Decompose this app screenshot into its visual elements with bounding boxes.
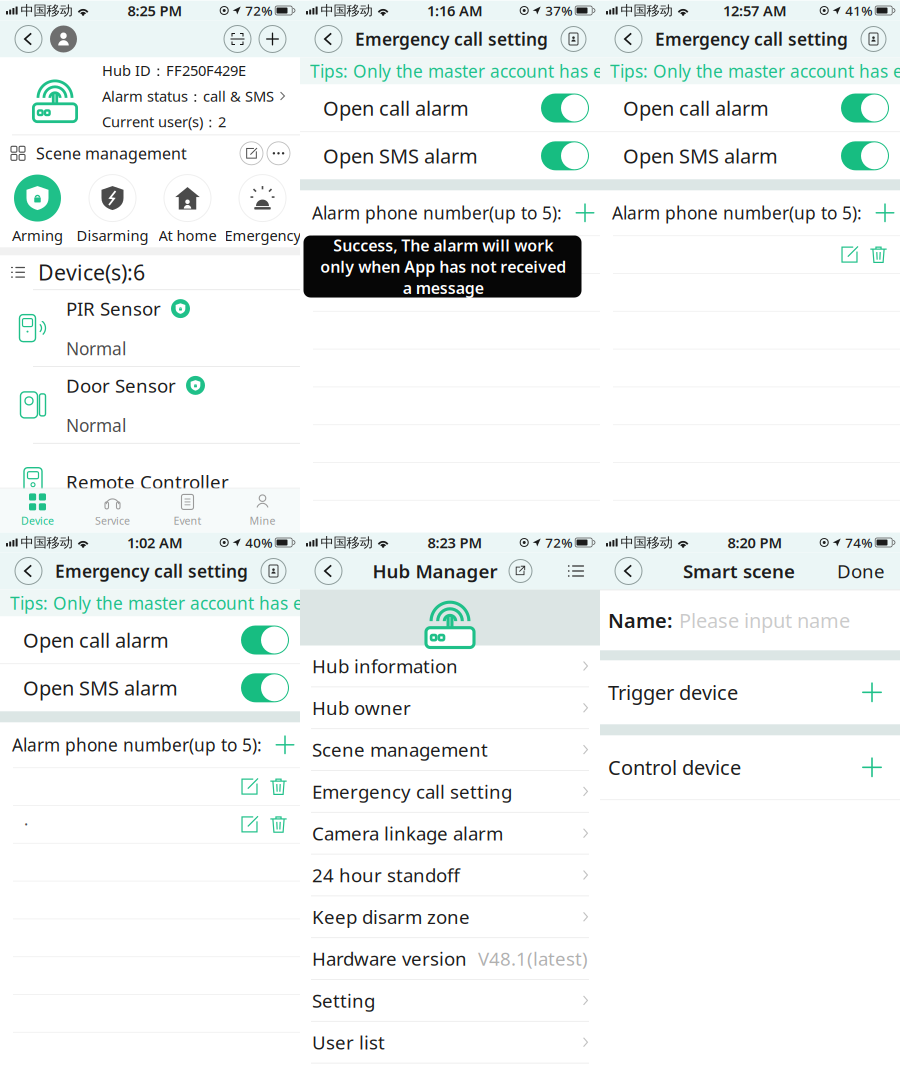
- staticText: Normal: [66, 414, 126, 437]
- staticText: Hub Manager: [372, 559, 497, 583]
- staticText: Open SMS alarm: [323, 142, 478, 169]
- staticText: Device(s):6: [38, 258, 145, 286]
- staticText: 中国移动: [21, 2, 73, 19]
- button[interactable]: 24 hour standoff: [300, 854, 600, 896]
- button[interactable]: More: [265, 140, 292, 167]
- button[interactable]: Back: [611, 553, 646, 588]
- staticText: 1:16 AM: [427, 1, 483, 20]
- button[interactable]: Service: [75, 488, 150, 532]
- staticText: Event: [173, 513, 201, 528]
- staticText: Tips: Only the master account has editin…: [610, 59, 900, 82]
- button[interactable]: Back: [11, 553, 46, 588]
- button[interactable]: Hub owner: [300, 687, 600, 729]
- staticText: 12:57 AM: [723, 1, 787, 20]
- button[interactable]: Contacts: [857, 22, 890, 55]
- staticText: Normal: [66, 337, 126, 360]
- button[interactable]: PIR Sensor: [0, 289, 300, 366]
- staticText: Emergency call setting: [55, 559, 248, 582]
- button[interactable]: User list: [300, 1022, 600, 1063]
- button[interactable]: Back: [311, 553, 346, 588]
- button[interactable]: Share: [505, 556, 535, 586]
- button[interactable]: Emergency: [225, 171, 300, 247]
- staticText: 37%: [545, 2, 572, 19]
- button[interactable]: Add phone number: [270, 730, 300, 760]
- staticText: Emergency call setting: [312, 779, 512, 804]
- staticText: V48.1(latest): [478, 946, 588, 971]
- button[interactable]: Scene management: [300, 729, 600, 771]
- staticText: Please input name: [679, 607, 850, 634]
- staticText: 中国移动: [621, 2, 673, 19]
- button[interactable]: Add phone number: [570, 198, 600, 228]
- staticText: Tips: Only the master account has editin…: [10, 591, 394, 614]
- button[interactable]: Menu: [562, 557, 590, 585]
- button[interactable]: Keep disarm zone: [300, 896, 600, 938]
- staticText: Hardware version: [312, 946, 467, 971]
- button[interactable]: Scan: [220, 21, 255, 56]
- staticText: Remote Controller: [66, 469, 229, 494]
- staticText: 8:25 PM: [127, 1, 182, 20]
- button[interactable]: Back: [611, 21, 646, 56]
- staticText: Camera linkage alarm: [312, 821, 503, 846]
- staticText: Mine: [249, 513, 275, 528]
- button[interactable]: Back: [311, 21, 346, 56]
- staticText: 中国移动: [621, 534, 673, 551]
- button[interactable]: Control device: [600, 735, 900, 799]
- button[interactable]: Hub information: [300, 645, 600, 687]
- button[interactable]: Contacts: [257, 554, 290, 587]
- button[interactable]: Delete number: [264, 772, 293, 801]
- staticText: 74%: [845, 534, 872, 551]
- button[interactable]: Setting: [300, 980, 600, 1022]
- staticText: Smart scene: [683, 559, 795, 583]
- button[interactable]: Delete number: [264, 810, 293, 839]
- button[interactable]: Arming: [0, 171, 75, 247]
- button[interactable]: Mine: [225, 488, 300, 532]
- staticText: 8:20 PM: [727, 533, 782, 552]
- button[interactable]: Camera linkage alarm: [300, 813, 600, 854]
- staticText: Emergency call setting: [655, 27, 848, 50]
- button[interactable]: At home: [150, 171, 225, 247]
- staticText: Open call alarm: [323, 95, 469, 121]
- staticText: Hub information: [312, 654, 458, 678]
- staticText: User list: [312, 1030, 385, 1055]
- staticText: Scene management: [312, 737, 488, 762]
- staticText: 中国移动: [321, 2, 373, 19]
- button[interactable]: Device: [0, 488, 75, 532]
- button[interactable]: Back: [11, 21, 46, 56]
- staticText: Current user(s)：2: [102, 112, 226, 131]
- staticText: Hub owner: [312, 695, 411, 720]
- button[interactable]: Delete number: [864, 240, 893, 269]
- button[interactable]: Edit scenes: [238, 140, 265, 167]
- staticText: Alarm phone number(up to 5):: [312, 201, 562, 224]
- staticText: Done: [837, 559, 885, 583]
- staticText: Name:: [608, 607, 673, 634]
- staticText: 8:23 PM: [427, 533, 482, 552]
- staticText: 中国移动: [21, 534, 73, 551]
- button[interactable]: Event: [150, 488, 225, 532]
- staticText: Emergency: [224, 226, 300, 245]
- button[interactable]: Hardware version: [300, 938, 600, 980]
- button[interactable]: Remote Controller: [0, 443, 300, 520]
- staticText: Disarming: [76, 226, 148, 245]
- button[interactable]: Contacts: [557, 22, 590, 55]
- staticText: Open call alarm: [623, 95, 769, 121]
- button[interactable]: Account: [46, 21, 81, 56]
- button[interactable]: Done: [832, 554, 890, 587]
- button[interactable]: Emergency call setting: [300, 771, 600, 813]
- staticText: Service: [95, 513, 130, 528]
- staticText: ·: [24, 814, 28, 835]
- staticText: Device: [21, 513, 54, 528]
- button[interactable]: Door Sensor: [0, 366, 300, 443]
- button[interactable]: Disarming: [75, 171, 150, 247]
- button[interactable]: Edit number: [235, 772, 264, 801]
- button[interactable]: Add: [255, 21, 290, 56]
- staticText: Scene management: [36, 143, 187, 164]
- staticText: Open SMS alarm: [23, 674, 178, 701]
- button[interactable]: Add phone number: [870, 198, 900, 228]
- button[interactable]: Edit number: [835, 240, 864, 269]
- staticText: 24 hour standoff: [312, 863, 460, 887]
- button[interactable]: Trigger device: [600, 660, 900, 724]
- button[interactable]: Edit number: [235, 810, 264, 839]
- staticText: Control device: [608, 754, 741, 781]
- staticText: Setting: [312, 988, 375, 1013]
- staticText: Keep disarm zone: [312, 904, 470, 929]
